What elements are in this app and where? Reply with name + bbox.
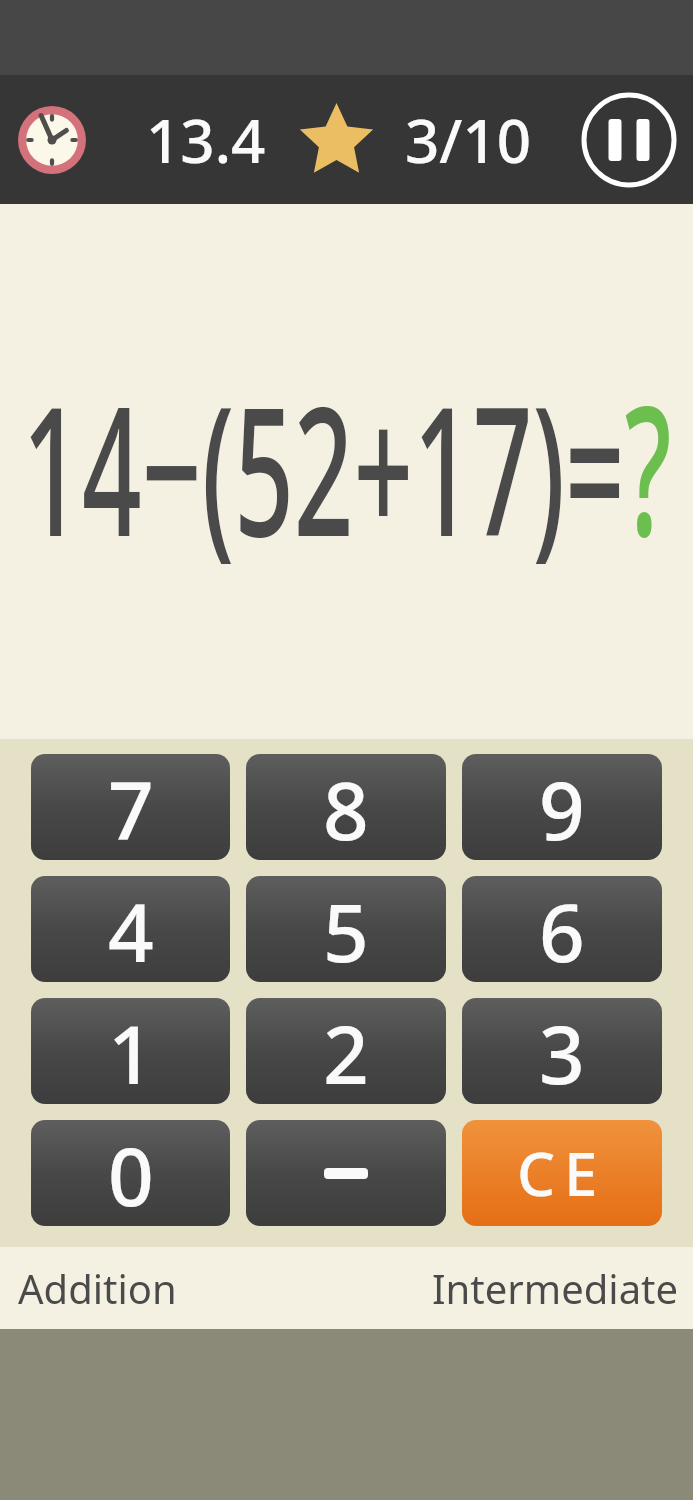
staticText: 2 — [323, 998, 369, 1104]
button[interactable]: 1 — [31, 998, 230, 1104]
staticText: 9 — [539, 754, 585, 860]
button[interactable] — [581, 92, 677, 188]
button[interactable]: 3 — [462, 998, 662, 1104]
button[interactable]: 6 — [462, 876, 662, 982]
staticText: CE — [517, 1132, 607, 1214]
staticText: 3/10 — [405, 99, 532, 181]
staticText: 13.4 — [146, 99, 266, 181]
staticText: 8 — [323, 754, 369, 860]
staticText: 6 — [539, 876, 585, 982]
staticText: Intermediate — [432, 1261, 679, 1315]
button[interactable]: 9 — [462, 754, 662, 860]
button[interactable]: 8 — [246, 754, 446, 860]
button[interactable]: 7 — [31, 754, 230, 860]
staticText: 5 — [323, 876, 369, 982]
staticText: 0 — [108, 1120, 154, 1226]
button[interactable]: 4 — [31, 876, 230, 982]
button[interactable]: 2 — [246, 998, 446, 1104]
staticText: 4 — [108, 876, 154, 982]
staticText: Addition — [18, 1261, 177, 1315]
button[interactable]: CE — [462, 1120, 662, 1226]
staticText: 1 — [108, 998, 154, 1104]
button[interactable]: 0 — [31, 1120, 230, 1226]
staticText: 3 — [539, 998, 585, 1104]
button[interactable]: 5 — [246, 876, 446, 982]
staticText: 7 — [108, 754, 154, 860]
button[interactable] — [246, 1120, 446, 1226]
staticText: 14−(52+17)=? — [22, 346, 672, 588]
